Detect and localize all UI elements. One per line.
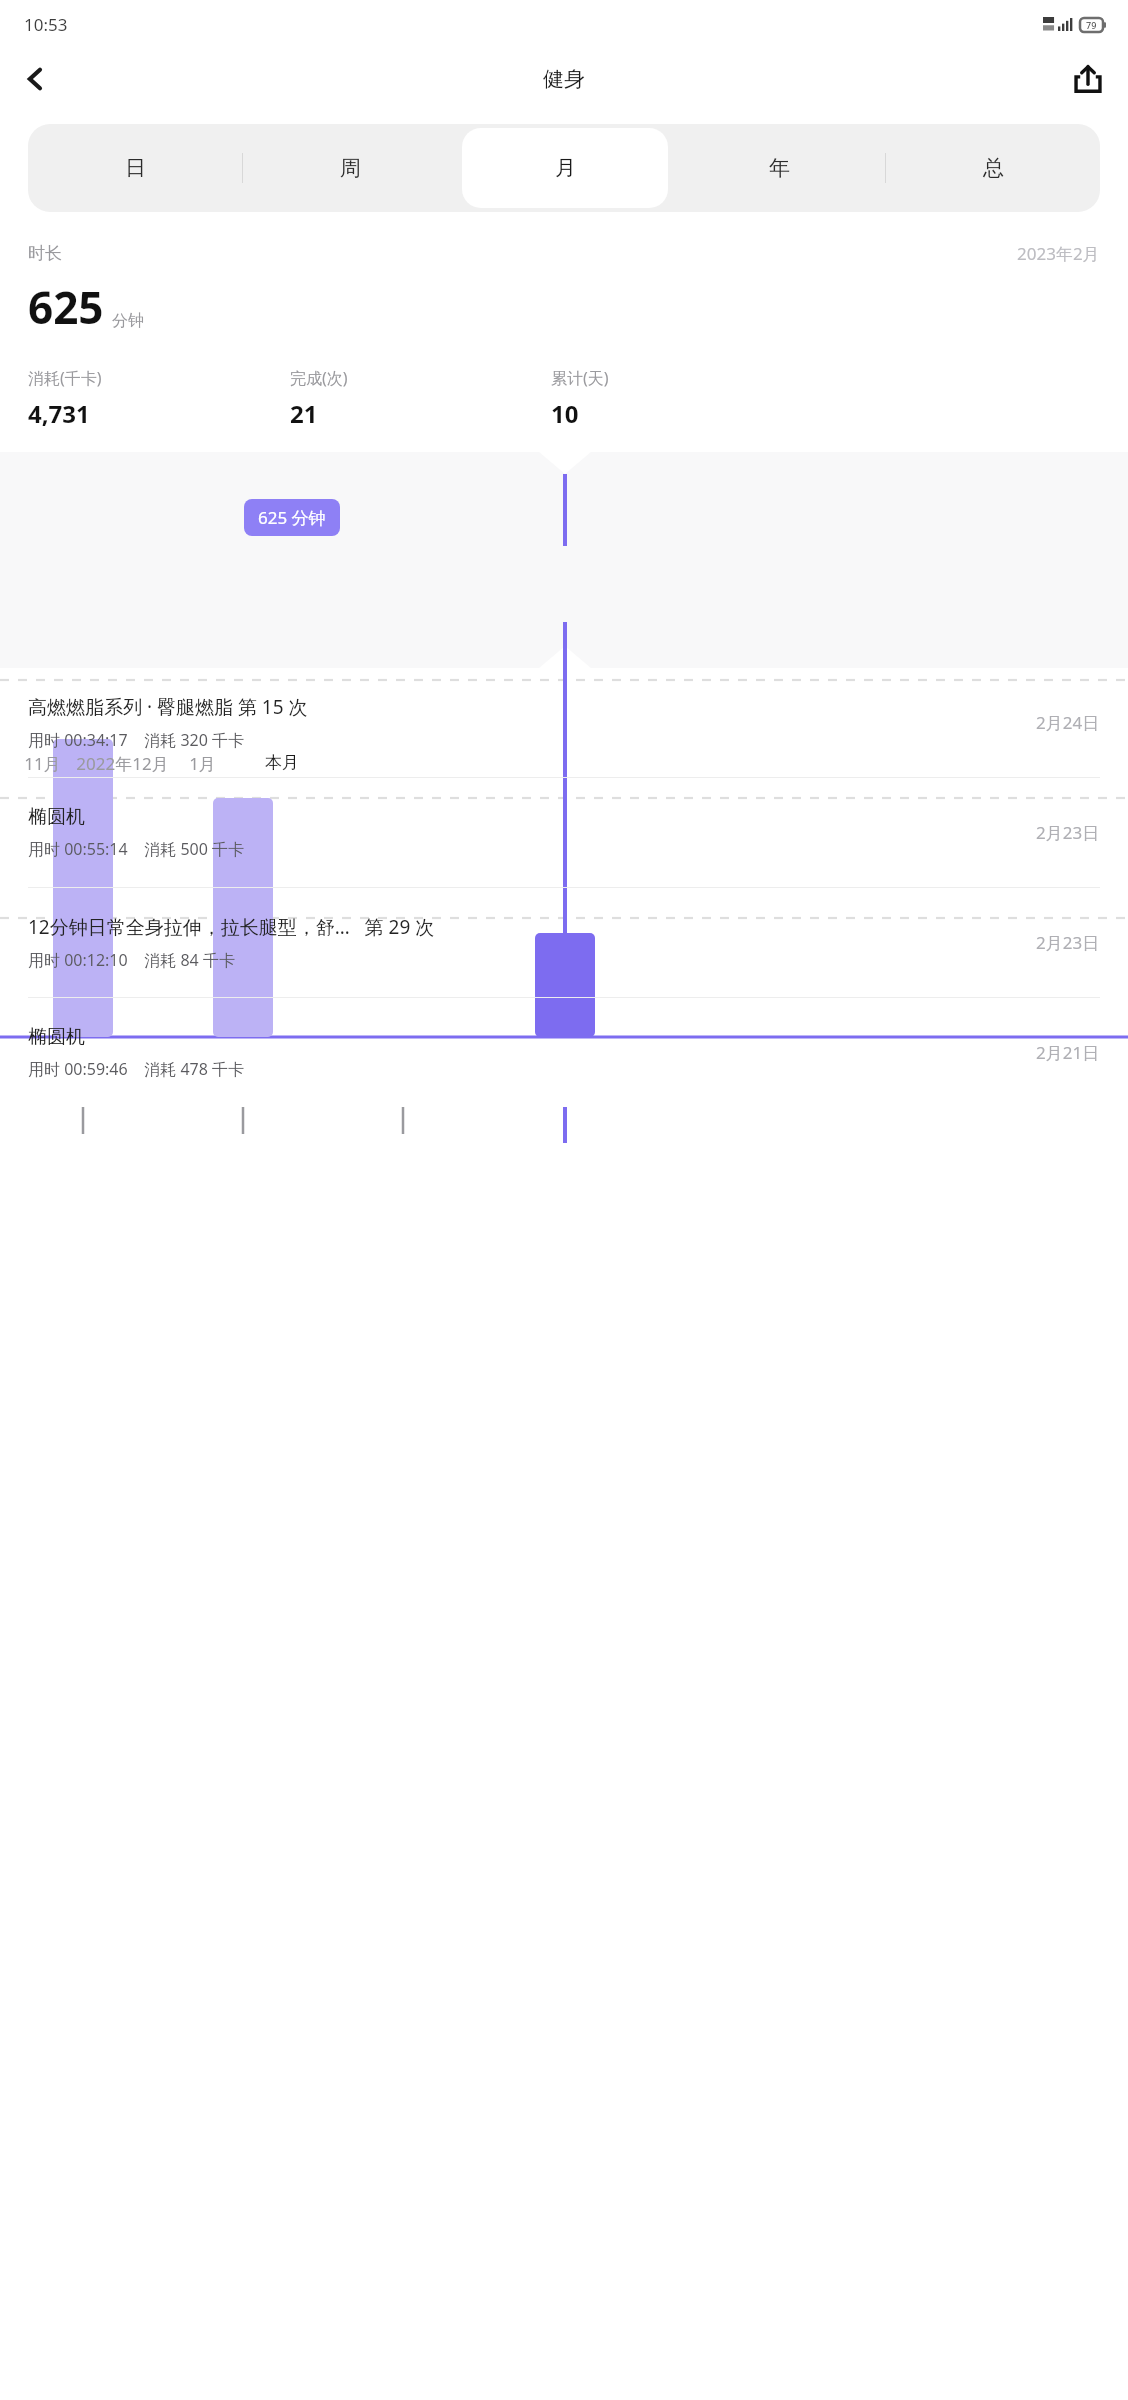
staticText: 用时 00:55:14 消耗 500 千卡	[28, 838, 245, 860]
button[interactable]: Back	[8, 51, 64, 107]
staticText: 2月23日	[1036, 931, 1100, 954]
staticText: 625	[28, 277, 104, 337]
staticText: 累计(天)	[551, 367, 609, 389]
staticText: 用时 00:34:17 消耗 320 千卡	[28, 729, 245, 751]
staticText: 2月23日	[1036, 821, 1100, 844]
staticText: 1月	[189, 752, 216, 775]
staticText: 2月24日	[1036, 711, 1100, 734]
staticText: 月	[555, 155, 576, 181]
button[interactable]: 椭圆机	[0, 778, 1128, 887]
staticText: 消耗(千卡)	[28, 367, 102, 389]
staticText: 2月21日	[1036, 1041, 1100, 1064]
staticText: 10:53	[24, 13, 68, 36]
staticText: 本月	[265, 752, 299, 773]
button[interactable]: 月	[462, 128, 668, 208]
staticText: 分钟	[112, 311, 144, 331]
staticText: 用时 00:59:46 消耗 478 千卡	[28, 1058, 245, 1080]
button[interactable]: Share	[1060, 51, 1116, 107]
staticText: 10	[551, 397, 579, 430]
button[interactable]: 周	[247, 128, 454, 208]
button[interactable]: 日	[32, 128, 239, 208]
staticText: 625 分钟	[258, 506, 326, 529]
staticText: 日	[125, 155, 146, 181]
staticText: 高燃燃脂系列 · 臀腿燃脂 第 15 次	[28, 694, 308, 720]
button[interactable]: 高燃燃脂系列 · 臀腿燃脂 第 15 次	[0, 668, 1128, 777]
staticText: 79	[1086, 19, 1097, 31]
staticText: 健身	[543, 66, 585, 92]
staticText: 椭圆机	[28, 1025, 85, 1049]
staticText: 总	[983, 155, 1004, 181]
staticText: 椭圆机	[28, 805, 85, 829]
staticText: 2023年2月	[1017, 242, 1100, 265]
button[interactable]: 12分钟日常全身拉伸，拉长腿型，舒… 第 29 次	[0, 888, 1128, 997]
staticText: 年	[769, 155, 790, 181]
button[interactable]: 年	[676, 128, 882, 208]
staticText: 周	[340, 155, 361, 181]
button[interactable]: 椭圆机	[0, 998, 1128, 1107]
button[interactable]: 总	[890, 128, 1096, 208]
staticText: 12分钟日常全身拉伸，拉长腿型，舒… 第 29 次	[28, 914, 435, 940]
staticText: 21	[290, 397, 318, 430]
staticText: 时长	[28, 243, 62, 264]
staticText: 11月	[24, 752, 61, 775]
staticText: 4,731	[28, 397, 90, 430]
staticText: 完成(次)	[290, 367, 348, 389]
staticText: 2022年12月	[76, 752, 169, 775]
staticText: 用时 00:12:10 消耗 84 千卡	[28, 949, 235, 971]
